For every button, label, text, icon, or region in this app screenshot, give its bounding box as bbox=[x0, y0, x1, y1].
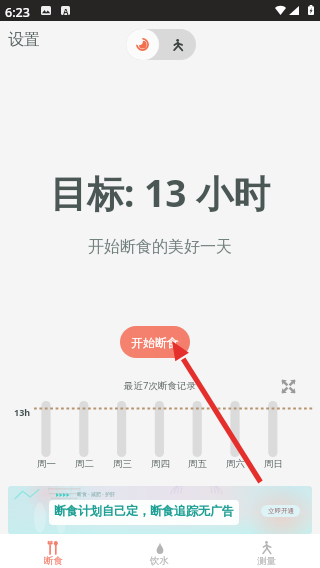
staticText: 周六 bbox=[226, 458, 245, 470]
staticText: 饮水 bbox=[150, 555, 169, 567]
staticText: 断食 · 减肥 · 护肝 bbox=[77, 491, 115, 498]
button[interactable]: 测量 bbox=[213, 534, 320, 568]
button[interactable]: Activity mode bbox=[159, 29, 196, 60]
staticText: 开始断食 bbox=[131, 335, 179, 350]
button[interactable]: Fasting mode bbox=[126, 29, 159, 60]
button[interactable]: Expand chart bbox=[281, 379, 296, 394]
staticText: 6:23 bbox=[5, 4, 30, 21]
staticText: 最近7次断食记录 bbox=[0, 379, 320, 392]
staticText: 目标: 13 小时 bbox=[0, 167, 320, 218]
button[interactable]: 设置 bbox=[8, 30, 40, 50]
button[interactable]: 断食 bbox=[0, 534, 106, 568]
staticText: 断食计划自己定，断食追踪无广告 bbox=[54, 503, 234, 518]
staticText: A bbox=[63, 6, 69, 15]
staticText: 周三 bbox=[113, 458, 132, 470]
button[interactable]: 立即开通 bbox=[261, 505, 300, 517]
button[interactable]: 饮水 bbox=[106, 534, 213, 568]
button[interactable]: 开始断食 bbox=[120, 326, 190, 358]
staticText: 周四 bbox=[151, 458, 170, 470]
staticText: 立即开通 bbox=[268, 507, 294, 515]
staticText: 开始断食的美好一天 bbox=[0, 237, 320, 257]
staticText: 13h bbox=[14, 406, 31, 418]
button[interactable]: 断食计划自己定，断食追踪无广告 bbox=[8, 486, 312, 534]
staticText: 周五 bbox=[188, 458, 207, 470]
staticText: 周日 bbox=[264, 458, 283, 470]
staticText: 测量 bbox=[257, 555, 276, 567]
staticText: 周一 bbox=[37, 458, 56, 470]
staticText: 断食 bbox=[44, 555, 63, 567]
staticText: 周二 bbox=[75, 458, 94, 470]
